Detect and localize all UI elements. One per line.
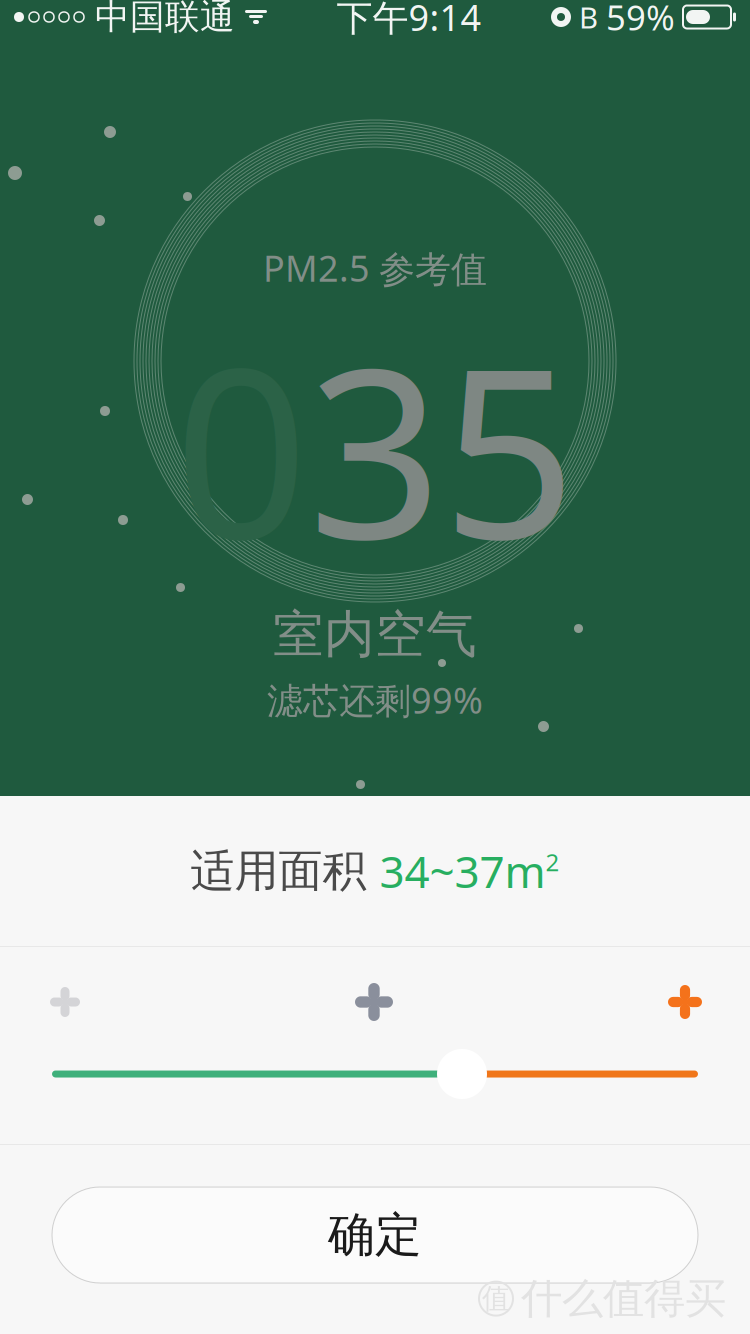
staticText: 什么值得买 bbox=[521, 1273, 726, 1324]
staticText: 确定 bbox=[328, 1206, 422, 1264]
staticText: 59% bbox=[606, 0, 675, 40]
staticText: 34~37m bbox=[379, 842, 545, 900]
staticText: PM2.5 参考值 bbox=[263, 244, 487, 292]
staticText: 2 bbox=[545, 846, 559, 878]
staticText: 0 bbox=[174, 292, 308, 604]
staticText: 适用面积 bbox=[190, 844, 379, 898]
staticText: 中国联通 bbox=[95, 0, 235, 38]
staticText: B bbox=[579, 0, 598, 36]
staticText: 室内空气 bbox=[273, 604, 477, 666]
staticText: 值 bbox=[482, 1281, 510, 1316]
staticText: 滤芯还剩99% bbox=[267, 676, 483, 724]
staticText: 下午9:14 bbox=[336, 0, 481, 41]
button[interactable]: 确定 bbox=[52, 1187, 698, 1283]
staticText: 35 bbox=[308, 292, 576, 604]
